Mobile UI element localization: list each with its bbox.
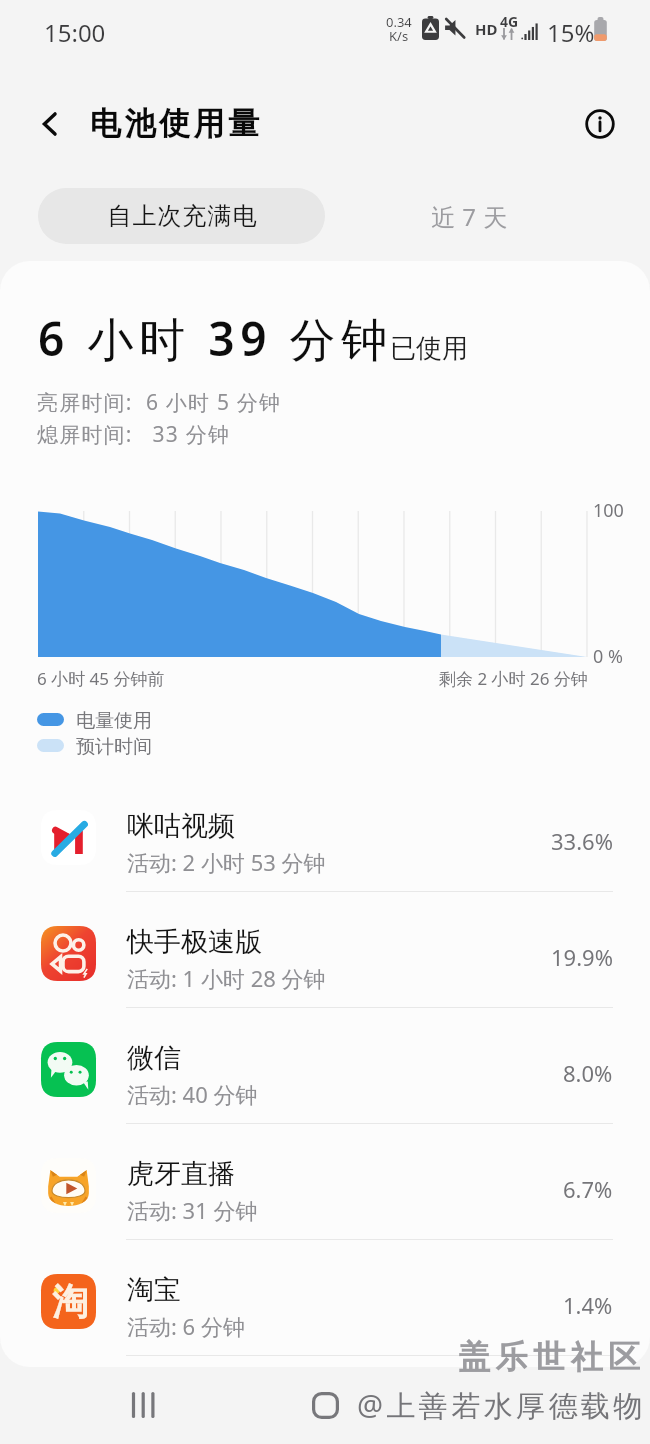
staticText: 19.9% [551,942,613,972]
button[interactable]: 微信 [0,1008,650,1124]
staticText: 盖乐世社区 [458,1337,646,1377]
staticText: 活动: 40 分钟 [127,1079,258,1109]
staticText: 淘 [52,1279,88,1324]
staticText: 0 % [593,644,623,669]
staticText: 快手极速版 [127,925,262,959]
button[interactable]: 快手极速版 [0,892,650,1008]
button[interactable]: Home [301,1381,349,1429]
button[interactable]: Back [26,100,74,148]
staticText: 6.7% [563,1174,613,1204]
staticText: 虎牙直播 [127,1157,235,1191]
staticText: 活动: 31 分钟 [127,1195,258,1225]
staticText: 100 [593,498,624,523]
staticText: 剩余 2 小时 26 分钟 [439,667,588,690]
button[interactable]: 咪咕视频 [0,776,650,892]
staticText: 活动: 1 小时 28 分钟 [127,963,326,993]
staticText: 8.0% [563,1058,613,1088]
staticText: HD [475,19,498,39]
staticText: 15:00 [44,16,106,49]
staticText: 4G [500,12,519,31]
staticText: @上善若水厚德载物 [357,1385,646,1425]
staticText: 亮屏时间: 6 小时 5 分钟 [37,388,282,417]
staticText: 15% [547,16,595,49]
staticText: 6 小时 45 分钟前 [37,667,165,690]
staticText: 淘宝 [127,1273,181,1307]
staticText: 近 7 天 [431,200,508,233]
button[interactable]: 近 7 天 [325,188,613,244]
staticText: 已使用 [390,332,468,365]
staticText: 电池使用量 [90,104,263,143]
staticText: 预计时间 [76,735,152,759]
staticText: 6 小时 39 分钟 [38,307,393,370]
staticText: 1.4% [563,1290,613,1320]
staticText: 电量使用 [76,709,152,733]
staticText: 自上次充满电 [107,201,257,231]
staticText: 熄屏时间: 33 分钟 [37,420,231,449]
staticText: 活动: 2 小时 53 分钟 [127,847,326,877]
staticText: 活动: 6 分钟 [127,1311,245,1341]
button[interactable]: 淘 [0,1240,650,1356]
button[interactable]: 虎牙直播 [0,1124,650,1240]
staticText: 咪咕视频 [127,809,235,843]
staticText: 微信 [127,1041,181,1075]
staticText: 33.6% [551,826,613,856]
staticText: 0.34 [386,13,412,31]
button[interactable]: Information [576,100,624,148]
button[interactable]: Recent apps [119,1381,167,1429]
staticText: K/s [389,27,409,45]
button[interactable]: 自上次充满电 [38,188,325,244]
